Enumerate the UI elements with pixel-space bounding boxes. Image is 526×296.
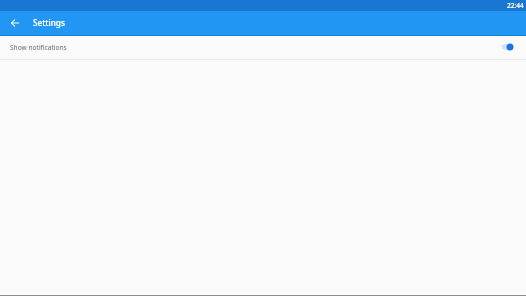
staticText: Show notifications	[10, 43, 67, 52]
button[interactable]: Show notifications	[0, 36, 526, 59]
staticText: Settings	[33, 17, 65, 28]
staticText: 22:44	[507, 1, 524, 10]
button[interactable]: Back	[3, 11, 27, 35]
button[interactable]: Show notifications toggle	[497, 40, 514, 56]
